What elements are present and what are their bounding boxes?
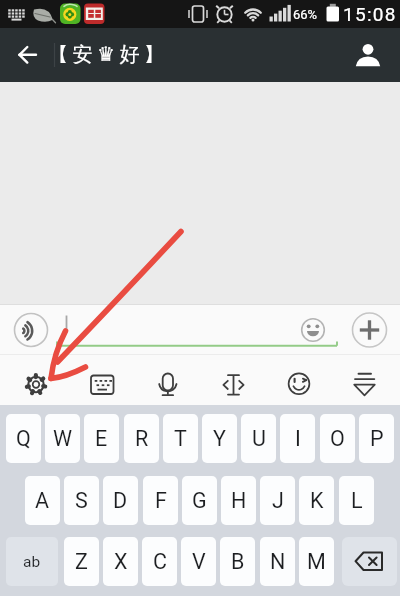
staticText: A	[35, 488, 50, 513]
button[interactable]: L	[339, 476, 374, 525]
button[interactable]	[12, 360, 60, 404]
staticText: 66%	[293, 7, 318, 22]
button[interactable]: I	[280, 414, 315, 463]
staticText: X	[114, 549, 128, 574]
button[interactable]: H	[221, 476, 256, 525]
button[interactable]	[342, 537, 397, 586]
staticText: I	[295, 426, 301, 451]
staticText: W	[53, 426, 73, 451]
staticText: B	[231, 549, 245, 574]
button[interactable]: U	[241, 414, 276, 463]
button[interactable]: Q	[6, 414, 41, 463]
button[interactable]	[77, 360, 125, 404]
button[interactable]	[143, 360, 191, 404]
staticText: S	[75, 488, 88, 513]
button[interactable]: C	[142, 537, 177, 586]
button[interactable]: M	[299, 537, 334, 586]
button[interactable]: J	[260, 476, 295, 525]
button[interactable]: Y	[202, 414, 237, 463]
staticText: N	[270, 549, 286, 574]
staticText: J	[272, 488, 284, 513]
staticText: R	[135, 426, 149, 451]
button[interactable]: P	[359, 414, 394, 463]
staticText: Y	[213, 426, 226, 451]
staticText: L	[351, 488, 363, 513]
button[interactable]: A	[25, 476, 60, 525]
staticText: U	[252, 426, 266, 451]
button[interactable]: O	[320, 414, 355, 463]
staticText: T	[174, 426, 187, 451]
staticText: F	[155, 488, 167, 513]
button[interactable]	[348, 35, 392, 75]
button[interactable]: V	[181, 537, 216, 586]
button[interactable]: X	[103, 537, 138, 586]
staticText: K	[310, 488, 324, 513]
staticText: V	[192, 549, 206, 574]
staticText: P	[370, 426, 384, 451]
staticText: H	[231, 488, 247, 513]
button[interactable]: W	[45, 414, 80, 463]
staticText: 15:08	[343, 3, 397, 25]
staticText: O	[330, 426, 345, 451]
button[interactable]	[274, 360, 322, 404]
button[interactable]: K	[299, 476, 334, 525]
button[interactable]	[52, 308, 342, 350]
button[interactable]: E	[84, 414, 119, 463]
staticText: ab	[23, 553, 41, 571]
button[interactable]: G	[182, 476, 217, 525]
staticText: G	[192, 488, 207, 513]
staticText: E	[95, 426, 108, 451]
staticText: M	[307, 549, 326, 574]
staticText: Z	[75, 549, 88, 574]
button[interactable]: D	[103, 476, 138, 525]
button[interactable]: S	[64, 476, 99, 525]
button[interactable]: T	[163, 414, 198, 463]
button[interactable]: Z	[64, 537, 99, 586]
button[interactable]: R	[124, 414, 159, 463]
button[interactable]	[8, 35, 48, 75]
button[interactable]: F	[143, 476, 178, 525]
staticText: D	[113, 488, 128, 513]
button[interactable]	[208, 360, 256, 404]
button[interactable]	[352, 313, 387, 348]
button[interactable]: B	[220, 537, 255, 586]
button[interactable]	[301, 318, 325, 342]
button[interactable]: ab	[6, 537, 58, 586]
button[interactable]	[339, 360, 387, 404]
staticText: 【安♛好】	[48, 42, 169, 67]
button[interactable]: N	[260, 537, 295, 586]
button[interactable]	[14, 313, 48, 347]
staticText: C	[153, 549, 167, 574]
staticText: Q	[16, 426, 31, 451]
